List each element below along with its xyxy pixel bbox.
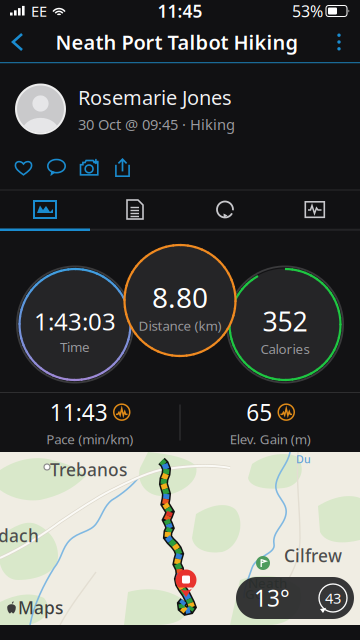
staticText: 8.80 [152, 279, 208, 316]
staticText: dach [0, 524, 39, 547]
staticText: 13° [254, 583, 290, 613]
staticText: Time [60, 338, 90, 356]
staticText: Trebanos [50, 458, 127, 481]
button[interactable]: Comment [40, 155, 73, 179]
staticText: 11:45 [157, 0, 202, 22]
button[interactable]: Charts [270, 190, 360, 228]
staticText: 30 Oct @ 09:45 · Hiking [78, 114, 235, 134]
staticText: 352 [262, 303, 307, 339]
staticText: Calories [260, 340, 309, 358]
staticText: Cilfrew [284, 544, 342, 567]
staticText: Rosemarie Jones [78, 84, 232, 111]
staticText: 11:43 [50, 397, 108, 427]
staticText: Du [296, 452, 311, 466]
staticText: EE [31, 1, 47, 21]
staticText: 65 [246, 397, 272, 427]
staticText: 53% [292, 0, 323, 22]
button[interactable]: Summary [0, 190, 90, 228]
button[interactable]: Details [90, 190, 180, 228]
staticText: Go [245, 585, 263, 603]
staticText: 1:43:03 [34, 305, 116, 337]
button[interactable]: Add photo [73, 155, 106, 179]
button[interactable]: Like [7, 155, 40, 179]
staticText: Neath [248, 574, 287, 592]
button[interactable]: Share [106, 155, 139, 179]
staticText: Pace (min/km) [46, 430, 133, 448]
button[interactable]: Back [0, 24, 36, 60]
button[interactable]: Laps [180, 190, 270, 228]
staticText: Distance (km) [138, 317, 221, 334]
staticText: Neath Port Talbot Hiking [55, 29, 298, 55]
staticText: Maps [18, 596, 63, 619]
staticText: 43 [325, 588, 341, 608]
button[interactable]: More [318, 23, 360, 61]
staticText: Elev. Gain (m) [230, 430, 311, 448]
